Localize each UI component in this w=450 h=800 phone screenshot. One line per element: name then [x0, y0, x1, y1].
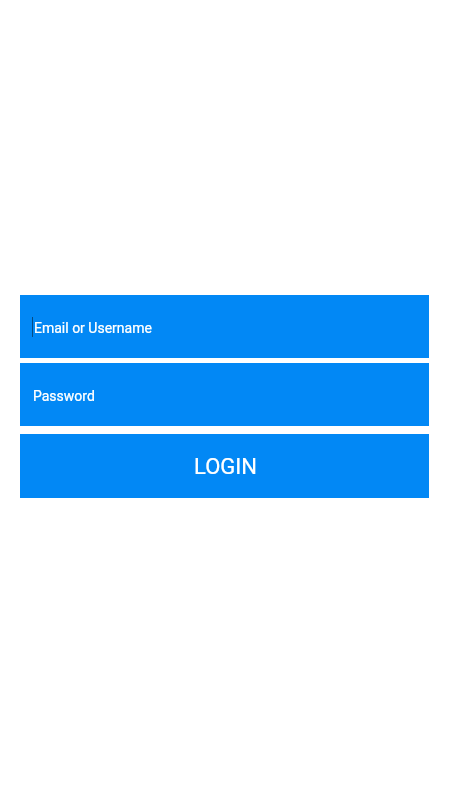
staticText: Password [33, 388, 95, 404]
button[interactable]: Password input field [20, 363, 429, 426]
button[interactable]: LOGIN [20, 434, 429, 498]
button[interactable]: Email or Username input field [20, 295, 429, 358]
staticText: LOGIN [194, 454, 257, 480]
staticText: Email or Username [34, 320, 152, 336]
